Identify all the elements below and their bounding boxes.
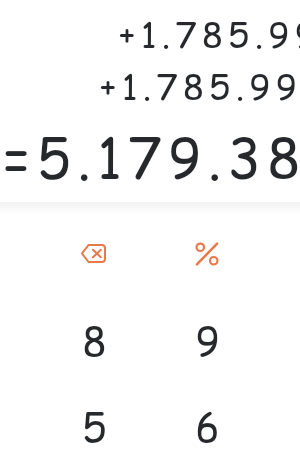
button[interactable]: Backspace — [48, 216, 138, 290]
button[interactable]: 9 — [162, 305, 252, 379]
staticText: 9 — [195, 314, 220, 370]
staticText: 8 — [82, 314, 107, 370]
button[interactable]: 5 — [49, 391, 139, 450]
staticText: +1.785.99 — [119, 10, 300, 59]
button[interactable]: 6 — [162, 391, 252, 450]
staticText: 5 — [82, 400, 107, 450]
staticText: 6 — [195, 400, 220, 450]
button[interactable]: Percent — [162, 217, 252, 291]
button[interactable]: 8 — [49, 305, 139, 379]
staticText: +1.785.99 — [100, 62, 300, 111]
staticText: =5.179.38 — [3, 120, 300, 197]
